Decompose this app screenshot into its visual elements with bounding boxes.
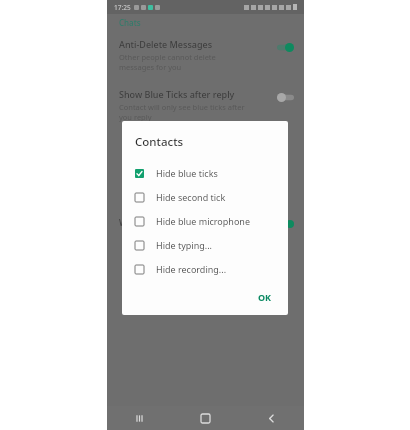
staticText: Pattern [148, 271, 176, 282]
button[interactable]: Hide second tick [135, 185, 278, 209]
staticText: Contacts [135, 134, 184, 150]
button[interactable]: Pattern [107, 269, 304, 284]
button[interactable]: Recents [107, 406, 172, 430]
button[interactable]: Toggle on [277, 43, 294, 52]
staticText: WhatsApp Lock [119, 217, 182, 229]
button[interactable]: Home [172, 406, 238, 430]
staticText: Show Blue Ticks after reply [119, 88, 235, 100]
staticText: Hide second tick [156, 191, 226, 203]
button[interactable]: Toggle off [277, 93, 294, 102]
staticText: OK [258, 291, 272, 303]
staticText: Other people cannot delete messages for … [119, 52, 216, 72]
staticText: Hide blue ticks [156, 167, 218, 179]
staticText: Contact will only see blue ticks after y… [119, 102, 245, 122]
button[interactable]: Anti-Delete Messages [107, 36, 304, 74]
button[interactable]: Back [238, 406, 304, 430]
button[interactable]: Hide recording... [135, 257, 278, 281]
button[interactable]: PIN [107, 297, 304, 312]
staticText: Hide recording... [156, 263, 227, 275]
button[interactable]: Hide blue ticks [135, 161, 278, 185]
staticText: Chats [119, 17, 141, 28]
button[interactable]: Hide typing... [135, 233, 278, 257]
staticText: Hide typing... [156, 239, 212, 251]
button[interactable]: Fingerprint [107, 241, 304, 256]
button[interactable]: Hide blue microphone [135, 209, 278, 233]
staticText: Anti-Delete Messages [119, 38, 213, 50]
button[interactable]: Toggle on [278, 220, 294, 228]
staticText: Fingerprint [148, 243, 191, 254]
button[interactable]: OK [252, 287, 278, 307]
staticText: Hide blue microphone [156, 215, 250, 227]
staticText: 17:25 [114, 3, 131, 12]
button[interactable]: Show Blue Ticks after reply [107, 86, 304, 124]
